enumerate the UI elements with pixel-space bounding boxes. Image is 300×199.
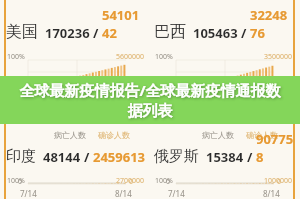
staticText: 确诊人数	[98, 130, 130, 140]
staticText: 8/14	[263, 188, 280, 199]
staticText: /	[247, 148, 253, 166]
button[interactable]: 病亡人数	[6, 124, 146, 199]
staticText: 8/14	[115, 113, 132, 124]
staticText: 15384	[206, 148, 244, 166]
staticText: 100%	[7, 52, 25, 62]
staticText: 全球最新疫情报告/全球最新疫情通报数据列表	[18, 80, 282, 120]
staticText: /	[93, 24, 99, 42]
staticText: 0	[166, 102, 171, 112]
staticText: 确诊人数	[246, 130, 278, 140]
button[interactable]: 病亡人数	[154, 124, 294, 199]
staticText: 907758	[256, 130, 294, 166]
staticText: 100%	[7, 176, 25, 186]
staticText: 2459613	[93, 148, 146, 166]
button[interactable]: 巴西	[154, 0, 294, 124]
staticText: 170236	[45, 24, 90, 42]
staticText: 48144	[43, 148, 81, 166]
staticText: 3500000	[264, 52, 293, 62]
staticText: /	[241, 24, 247, 42]
staticText: 美国	[6, 22, 38, 42]
staticText: 3224876	[250, 6, 294, 42]
staticText: 7/14	[20, 188, 37, 199]
staticText: 病亡人数	[54, 130, 86, 140]
staticText: 105463	[193, 24, 238, 42]
staticText: 5410142	[102, 6, 146, 42]
button[interactable]: 全球最新疫情报告/全球最新疫情通报数据列表	[0, 76, 300, 124]
staticText: 0	[129, 102, 134, 112]
staticText: /	[84, 148, 90, 166]
staticText: 100%	[155, 176, 173, 186]
staticText: 2700000	[116, 176, 145, 186]
staticText: 俄罗斯	[154, 147, 199, 166]
staticText: 100%	[155, 52, 173, 62]
staticText: 5600000	[116, 52, 145, 62]
staticText: 0	[277, 177, 282, 187]
staticText: 病亡人数	[202, 130, 234, 140]
staticText: 7/14	[168, 188, 185, 199]
staticText: 7/14	[168, 113, 185, 124]
staticText: 0	[166, 177, 171, 187]
staticText: 巴西	[154, 22, 186, 42]
staticText: 0	[18, 177, 23, 187]
staticText: 1000000	[264, 176, 293, 186]
staticText: 0	[129, 177, 134, 187]
button[interactable]: 美国	[6, 0, 146, 124]
staticText: 印度	[6, 147, 36, 166]
staticText: 8/14	[115, 188, 132, 199]
